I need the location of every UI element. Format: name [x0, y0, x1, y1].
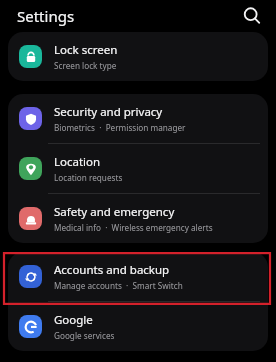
staticText: Google services: [54, 330, 115, 341]
button[interactable]: Safety and emergency: [8, 194, 268, 243]
staticText: Biometrics · Permission manager: [54, 122, 186, 133]
button[interactable]: Security and privacy: [8, 94, 268, 143]
staticText: Screen lock type: [54, 60, 117, 71]
staticText: Location: [54, 154, 101, 170]
staticText: Medical info · Wireless emergency alerts: [54, 222, 213, 233]
staticText: Location requests: [54, 172, 123, 183]
staticText: Accounts and backup: [54, 262, 170, 278]
staticText: Lock screen: [54, 42, 118, 58]
button[interactable]: Google: [8, 302, 268, 351]
staticText: Security and privacy: [54, 104, 163, 120]
staticText: Safety and emergency: [54, 204, 175, 220]
button[interactable]: Search: [241, 5, 263, 27]
staticText: Settings: [17, 6, 75, 26]
staticText: Manage accounts · Smart Switch: [54, 280, 183, 291]
staticText: Google: [54, 312, 93, 328]
button[interactable]: Accounts and backup: [8, 252, 268, 301]
button[interactable]: Lock screen: [8, 32, 268, 81]
button[interactable]: Location: [8, 144, 268, 193]
